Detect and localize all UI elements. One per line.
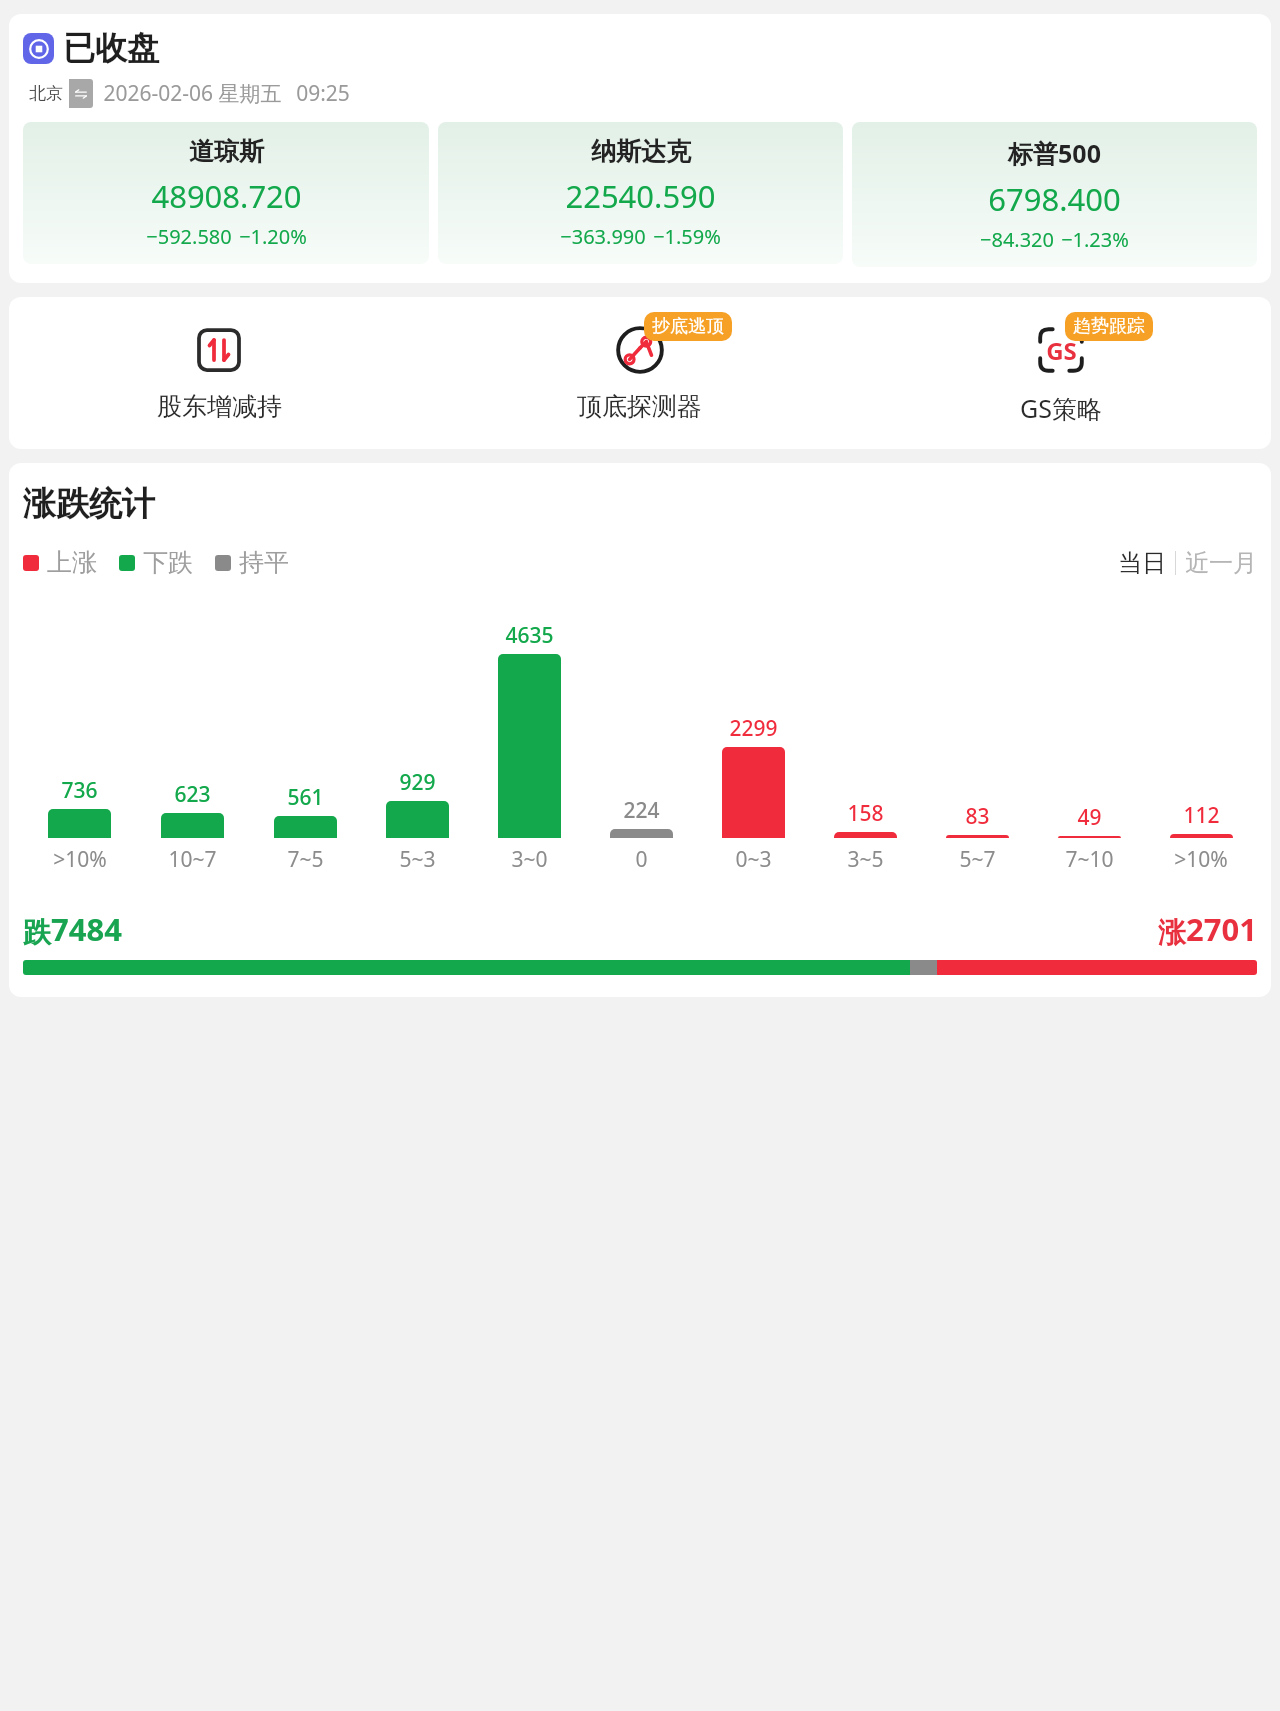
staticText: 929: [399, 768, 436, 797]
staticText: −1.59%: [653, 223, 721, 250]
staticText: 标普500: [1008, 136, 1101, 170]
staticText: 736: [61, 776, 98, 805]
staticText: 涨跌统计: [23, 483, 155, 525]
staticText: >10%: [1174, 845, 1228, 874]
staticText: 22540.590: [565, 175, 716, 217]
staticText: 49: [1077, 803, 1102, 832]
staticText: 北京: [29, 83, 63, 104]
staticText: 6798.400: [988, 178, 1121, 220]
staticText: 3~0: [511, 845, 548, 874]
staticText: 道琼斯: [189, 136, 264, 167]
button[interactable]: 近一月: [1185, 548, 1257, 578]
staticText: 2026-02-06 星期五: [103, 79, 282, 108]
staticText: 561: [287, 783, 324, 812]
staticText: 158: [847, 799, 884, 828]
button[interactable]: 纳斯达克: [438, 122, 843, 264]
staticText: GS: [1046, 334, 1077, 367]
staticText: 4635: [505, 621, 554, 650]
staticText: 112: [1183, 801, 1220, 830]
button[interactable]: 当日: [1118, 548, 1166, 578]
button[interactable]: 股东增减持: [9, 319, 429, 422]
staticText: 7~5: [287, 845, 324, 874]
staticText: GS策略: [1020, 391, 1102, 425]
staticText: 已收盘: [63, 28, 159, 68]
staticText: −1.20%: [239, 223, 307, 250]
staticText: 上涨: [47, 547, 97, 578]
staticText: 5~3: [399, 845, 436, 874]
staticText: 09:25: [296, 79, 350, 108]
staticText: 7~10: [1065, 845, 1114, 874]
button[interactable]: 北京: [23, 79, 93, 108]
staticText: 224: [623, 796, 660, 825]
staticText: 纳斯达克: [591, 136, 691, 167]
staticText: 2701: [1186, 908, 1257, 950]
staticText: 跌: [23, 915, 51, 950]
staticText: 623: [174, 780, 211, 809]
button[interactable]: 道琼斯: [23, 122, 429, 264]
staticText: 下跌: [143, 547, 193, 578]
staticText: 当日: [1118, 548, 1166, 578]
staticText: −84.320: [980, 226, 1054, 253]
staticText: >10%: [53, 845, 107, 874]
staticText: 持平: [239, 547, 289, 578]
button[interactable]: 抄底逃顶: [429, 319, 850, 422]
staticText: −592.580: [146, 223, 232, 250]
staticText: 7484: [51, 908, 122, 950]
staticText: 10~7: [168, 845, 217, 874]
staticText: −1.23%: [1061, 226, 1129, 253]
staticText: 2299: [729, 714, 778, 743]
staticText: 0~3: [735, 845, 772, 874]
button[interactable]: 标普500: [852, 122, 1257, 267]
staticText: 5~7: [959, 845, 996, 874]
staticText: 趋势跟踪: [1073, 315, 1145, 338]
staticText: 0: [635, 845, 648, 874]
staticText: 股东增减持: [157, 391, 282, 422]
staticText: 涨: [1158, 915, 1186, 950]
other: Market closed: [23, 33, 54, 64]
staticText: 近一月: [1185, 548, 1257, 578]
staticText: 顶底探测器: [577, 391, 702, 422]
staticText: 3~5: [847, 845, 884, 874]
button[interactable]: GS: [850, 319, 1271, 425]
staticText: 抄底逃顶: [652, 315, 724, 338]
staticText: 48908.720: [151, 175, 302, 217]
staticText: −363.990: [560, 223, 646, 250]
staticText: 83: [965, 802, 990, 831]
